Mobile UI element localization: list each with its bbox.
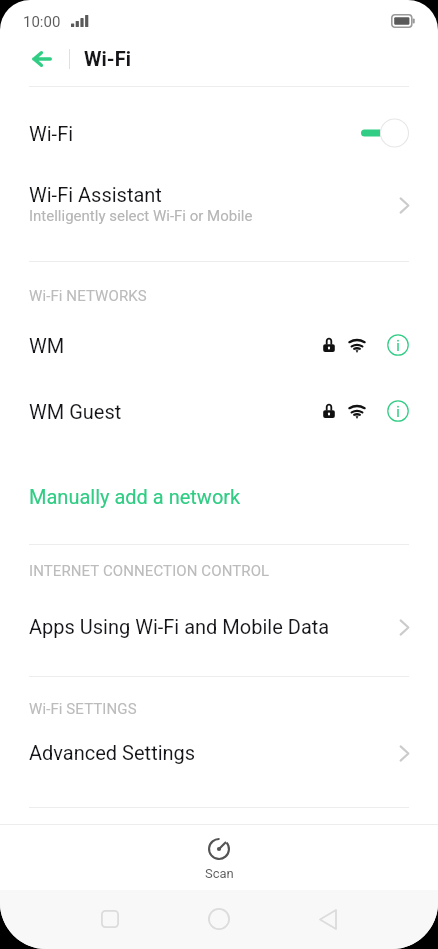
button[interactable]: Back (306, 897, 350, 941)
staticText: Intelligently select Wi-Fi or Mobile (29, 207, 253, 225)
staticText: WM (29, 334, 65, 357)
staticText: Wi-Fi NETWORKS (29, 287, 147, 305)
staticText: Wi-Fi (84, 47, 131, 70)
button[interactable] (0, 315, 438, 377)
staticText: Wi-Fi SETTINGS (29, 700, 137, 718)
button[interactable] (0, 172, 438, 238)
staticText: Manually add a network (29, 485, 241, 508)
staticText: Apps Using Wi-Fi and Mobile Data (29, 615, 330, 638)
staticText: Scan (205, 866, 234, 881)
button[interactable]: Recents (88, 897, 132, 941)
button[interactable] (0, 102, 438, 164)
staticText: Advanced Settings (29, 741, 196, 764)
button[interactable] (0, 825, 438, 890)
button[interactable] (0, 596, 438, 654)
button[interactable]: Home (197, 897, 241, 941)
button[interactable] (0, 722, 438, 780)
button[interactable]: Network details (387, 334, 409, 356)
staticText: INTERNET CONNECTION CONTROL (29, 562, 270, 580)
staticText: Wi-Fi (29, 122, 74, 145)
button[interactable]: Back (24, 41, 60, 77)
staticText: Wi-Fi Assistant (29, 183, 162, 206)
button[interactable]: Wi-Fi toggle (360, 118, 410, 148)
staticText: WM Guest (29, 400, 122, 423)
button[interactable] (0, 382, 438, 444)
button[interactable]: Network details (387, 400, 409, 422)
button[interactable] (0, 473, 438, 519)
staticText: 10:00 (23, 13, 61, 31)
